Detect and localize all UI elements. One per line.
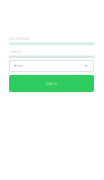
staticText: Username/Email [9, 37, 29, 40]
staticText: Select [14, 64, 22, 68]
button[interactable]: Select [9, 60, 94, 72]
button[interactable]: Sign in [9, 75, 94, 92]
staticText: Password [9, 50, 21, 53]
staticText: Sign in [46, 81, 57, 85]
